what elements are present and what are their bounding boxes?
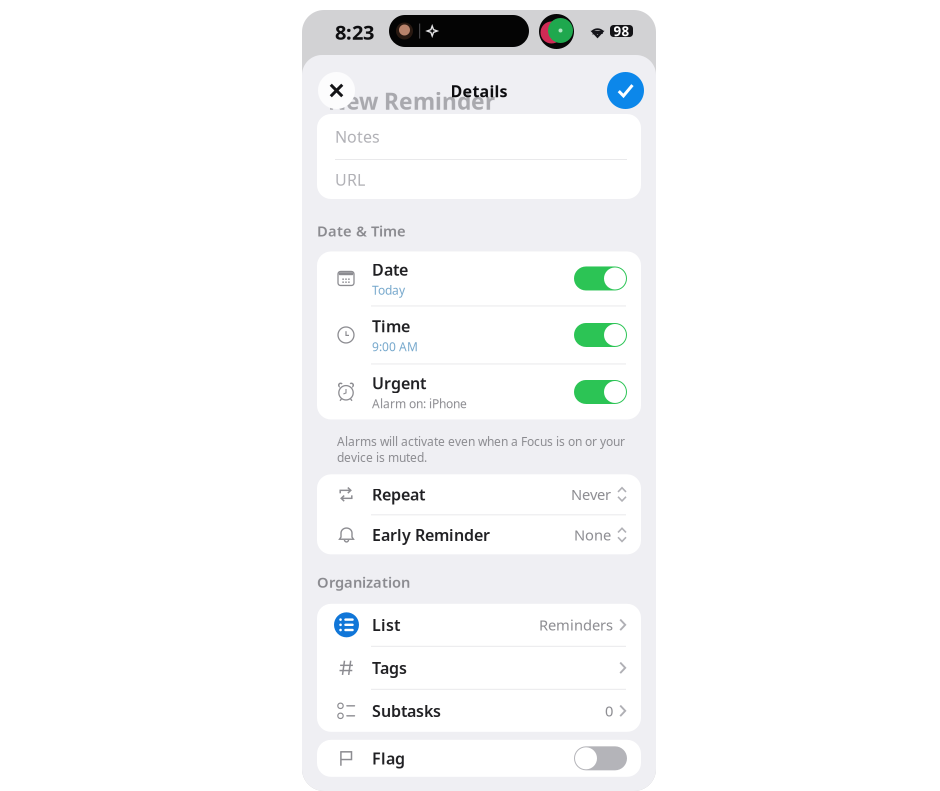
staticText: Tags xyxy=(372,657,407,678)
staticText: Alarm on: iPhone xyxy=(372,396,467,411)
button[interactable]: Date xyxy=(317,251,641,305)
staticText: Repeat xyxy=(372,484,425,505)
button[interactable]: Tags xyxy=(317,647,641,689)
staticText: Date & Time xyxy=(317,221,406,240)
staticText: None xyxy=(574,525,611,545)
staticText: List xyxy=(372,614,400,635)
staticText: 8:23 xyxy=(335,19,374,45)
button[interactable]: Early Reminder xyxy=(317,515,641,554)
staticText: Time xyxy=(372,315,410,337)
button[interactable]: List xyxy=(317,604,641,646)
staticText: Alarms will activate even when a Focus i… xyxy=(337,433,625,465)
staticText: 0 xyxy=(605,701,613,721)
staticText: Subtasks xyxy=(372,700,441,721)
staticText: Date xyxy=(372,259,408,280)
staticText: Organization xyxy=(317,572,410,592)
staticText: New Reminder xyxy=(328,86,495,116)
button[interactable]: Close xyxy=(318,72,355,109)
staticText: 9:00 AM xyxy=(372,339,418,354)
staticText: Today xyxy=(372,282,405,298)
button[interactable]: Repeat xyxy=(317,474,641,514)
staticText: Early Reminder xyxy=(372,524,490,545)
staticText: Details xyxy=(450,80,507,102)
staticText: URL xyxy=(335,169,365,190)
staticText: Urgent xyxy=(372,372,426,394)
staticText: Reminders xyxy=(539,615,613,635)
staticText: Never xyxy=(571,485,611,504)
button[interactable]: Subtasks xyxy=(317,690,641,732)
button[interactable]: Time xyxy=(317,306,641,363)
staticText: Flag xyxy=(372,748,405,769)
button[interactable]: Flag xyxy=(317,740,641,777)
button[interactable]: Done xyxy=(607,72,644,109)
button[interactable]: Urgent xyxy=(317,364,641,419)
staticText: Notes xyxy=(335,126,380,147)
staticText: 98 xyxy=(613,22,629,40)
